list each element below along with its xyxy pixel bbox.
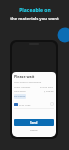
staticText: Pay method (14, 95, 26, 98)
button[interactable]: Send (14, 119, 54, 126)
staticText: Total price (14, 89, 26, 92)
staticText: Cancel (30, 128, 38, 131)
staticText: **** 1234 (19, 103, 31, 106)
button[interactable]: Cancel (14, 128, 54, 131)
button[interactable]: **** 1234 (14, 101, 54, 107)
staticText: Send (30, 121, 38, 125)
button[interactable]: Pay method (14, 94, 26, 99)
staticText: Placeable on (19, 7, 51, 14)
staticText: the materials you want (10, 16, 59, 22)
staticText: Please wait (14, 74, 35, 79)
staticText: #1246 5454 (40, 85, 54, 88)
staticText: your order is processing (14, 80, 42, 83)
staticText: $ 248.00 (44, 89, 54, 92)
staticText: Order number (14, 85, 31, 88)
